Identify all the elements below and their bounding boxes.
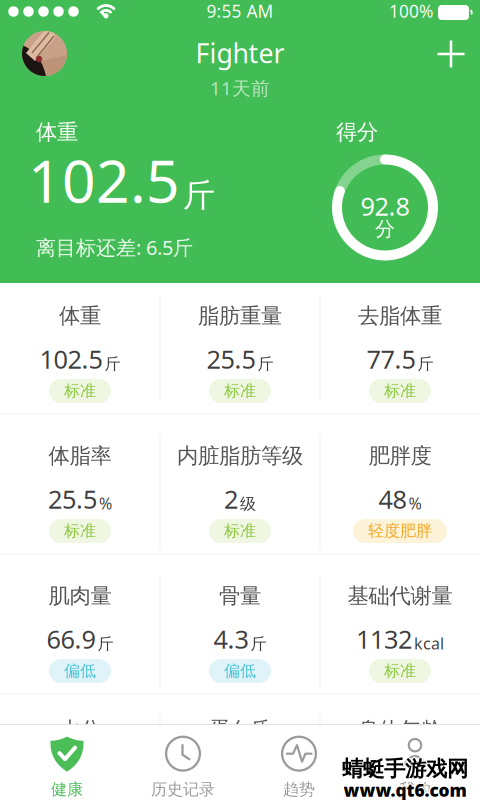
staticText: 25.5 [48,482,97,516]
button[interactable]: 水分 [0,688,160,800]
button[interactable]: Profile [22,31,67,76]
staticText: 分 [375,217,395,241]
staticText: 体重 [36,119,78,145]
staticText: 偏低 [64,661,96,681]
staticText: 蜻蜓手游戏网 [340,756,466,782]
button[interactable]: 健康 [0,730,120,800]
staticText: 16.5 [208,756,257,790]
staticText: 趋势 [283,780,315,799]
staticText: 9:55 AM [206,0,273,22]
staticText: 标准 [384,381,416,401]
button[interactable]: Me [360,730,480,800]
staticText: 102.5 [28,141,180,219]
staticText: 斤 [183,176,215,215]
staticText: 健康 [51,780,83,799]
staticText: www.qt6.com [343,780,466,800]
staticText: 内脏脂肪等级 [177,443,303,469]
staticText: 斤 [97,634,113,654]
staticText: 蜻蜓手游戏网 [342,754,468,781]
staticText: 92.8 [360,189,409,223]
button[interactable]: 蛋白质 [160,688,320,800]
staticText: 肥胖度 [368,443,431,469]
staticText: 体脂率 [48,443,111,469]
staticText: 标准 [384,795,416,800]
staticText: 100% [389,0,433,22]
staticText: 轻度肥胖 [368,521,432,541]
staticText: 脂肪重量 [198,303,282,329]
staticText: 历史记录 [151,780,215,799]
button[interactable]: 身体年龄 [320,688,480,800]
staticText: 标准 [64,795,96,800]
staticText: 蜻蜓手游戏网 [343,756,469,782]
button[interactable]: 骨量 [160,554,320,694]
staticText: 4.3 [213,622,248,656]
button[interactable]: 肌肉量 [0,554,160,694]
staticText: % [99,493,112,514]
staticText: 标准 [64,521,96,541]
staticText: 标准 [224,381,256,401]
staticText: www.qt6.com [345,778,468,800]
staticText: 66.9 [46,622,95,656]
button[interactable]: 肥胖度 [320,414,480,554]
staticText: 1132 [356,622,412,656]
staticText: 斤 [250,634,266,654]
staticText: 蜻蜓手游戏网 [342,757,468,784]
staticText: 斤 [104,354,120,374]
staticText: 53.2 [48,756,97,790]
staticText: 我的 [399,780,431,799]
staticText: 2 [224,482,238,516]
staticText: 102.5 [39,342,102,376]
button[interactable]: 趋势 [240,730,360,800]
staticText: 标准 [64,381,96,401]
staticText: 岁 [407,768,423,788]
staticText: Fighter [195,35,284,71]
staticText: 肌肉量 [48,583,111,609]
staticText: 斤 [417,354,433,374]
staticText: 蜻蜓手游戏网 [342,756,468,782]
staticText: 级 [240,494,256,514]
staticText: 基础代谢量 [347,583,452,609]
staticText: 斤 [257,354,273,374]
staticText: 离目标还差: 6.5斤 [36,234,193,261]
staticText: 标准 [384,661,416,681]
staticText: 骨量 [219,583,261,609]
staticText: 标准 [224,521,256,541]
staticText: 得分 [336,119,378,145]
staticText: 偏低 [224,661,256,681]
button[interactable]: 体脂率 [0,414,160,554]
staticText: 28 [377,756,405,790]
button[interactable]: 基础代谢量 [320,554,480,694]
staticText: www.qt6.com [343,778,466,800]
button[interactable]: 脂肪重量 [160,274,320,414]
button[interactable]: 去脂体重 [320,274,480,414]
staticText: 11天前 [210,76,270,100]
staticText: 身体年龄 [358,717,442,743]
staticText: 48 [378,482,406,516]
button[interactable]: Add record [437,40,465,68]
staticText: 蛋白质 [208,717,271,743]
staticText: 体重 [59,303,101,329]
staticText: kcal [414,633,444,654]
button[interactable]: 体重 [0,274,160,414]
button[interactable]: 内脏脂肪等级 [160,414,320,554]
staticText: www.qt6.com [343,777,466,800]
staticText: 去脂体重 [358,303,442,329]
staticText: 77.5 [366,342,415,376]
staticText: 25.5 [206,342,255,376]
staticText: www.qt6.com [342,778,465,800]
button[interactable]: 历史记录 [120,730,240,800]
staticText: 水分 [59,717,101,743]
staticText: % [408,493,421,514]
